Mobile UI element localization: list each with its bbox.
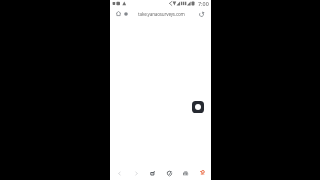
button[interactable]: News feed <box>145 166 159 180</box>
staticText: 7:00 <box>198 0 209 7</box>
button[interactable]: Tabs <box>178 166 192 180</box>
button[interactable]: Opera menu <box>195 166 209 180</box>
staticText: take.yanaosurveys.com <box>138 11 185 17</box>
button[interactable]: Forward <box>129 166 143 180</box>
button[interactable]: VPN shield <box>162 166 176 180</box>
button[interactable]: Back <box>112 166 126 180</box>
button[interactable]: Home <box>114 9 123 18</box>
button[interactable]: Site information <box>124 12 128 16</box>
button[interactable]: Reload <box>196 9 206 19</box>
